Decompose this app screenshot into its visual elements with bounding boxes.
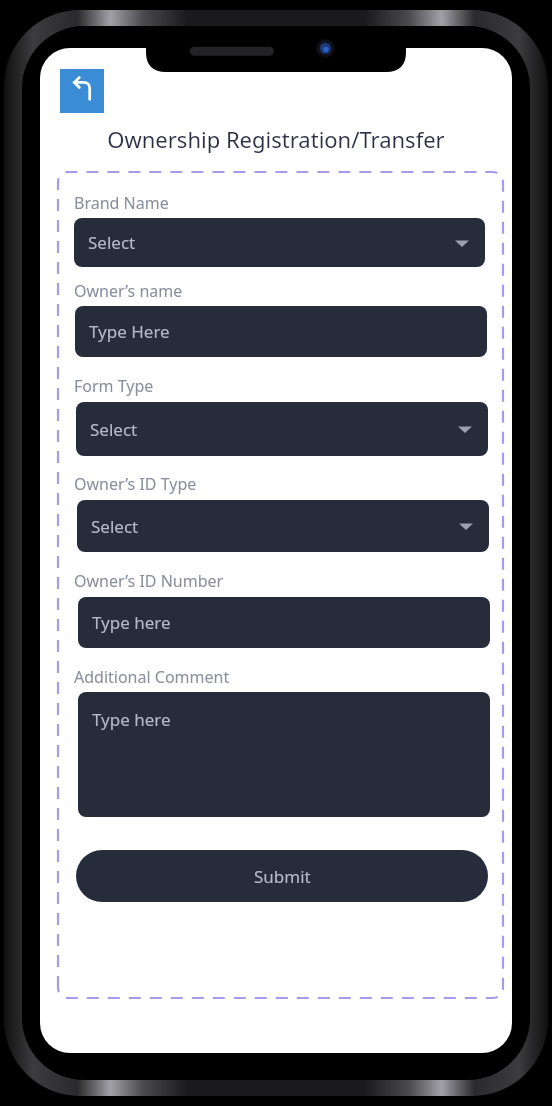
- staticText: Brand Name: [74, 192, 169, 214]
- staticText: Select: [91, 515, 139, 538]
- button[interactable]: Type here: [78, 597, 490, 648]
- staticText: Form Type: [74, 375, 154, 397]
- staticText: Owner’s name: [74, 280, 183, 302]
- staticText: Type Here: [89, 320, 170, 343]
- button[interactable]: Type Here: [75, 306, 487, 357]
- button[interactable]: Select: [77, 500, 489, 552]
- button[interactable]: Select: [74, 218, 485, 267]
- staticText: Type here: [92, 611, 171, 634]
- staticText: Submit: [254, 865, 311, 888]
- staticText: Additional Comment: [74, 666, 230, 688]
- staticText: Owner’s ID Type: [74, 473, 197, 495]
- button[interactable]: Select: [76, 402, 488, 456]
- staticText: Select: [88, 231, 136, 254]
- button[interactable]: Back: [60, 69, 104, 113]
- staticText: Owner’s ID Number: [74, 570, 224, 592]
- button[interactable]: Type here: [78, 692, 490, 817]
- staticText: Type here: [92, 708, 171, 731]
- button[interactable]: Submit: [76, 850, 488, 902]
- staticText: Select: [90, 418, 138, 441]
- staticText: Ownership Registration/Transfer: [40, 124, 512, 154]
